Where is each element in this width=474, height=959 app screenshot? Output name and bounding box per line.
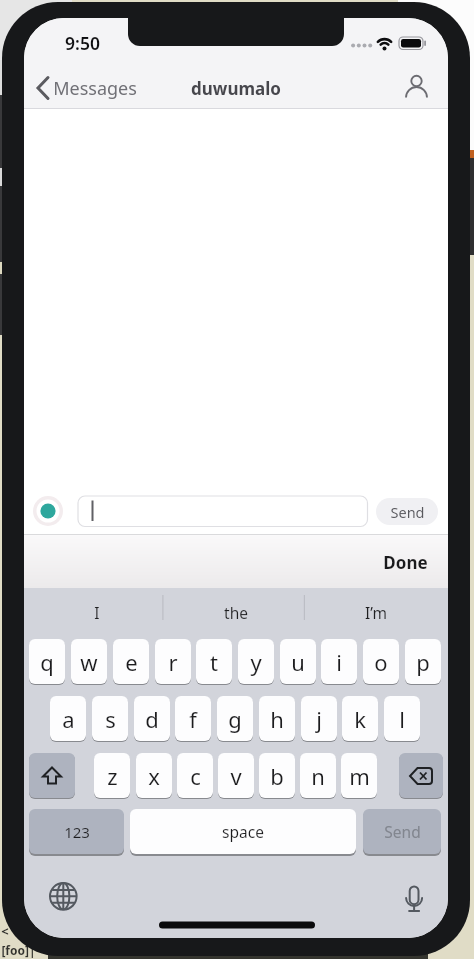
button[interactable]: I’m — [319, 599, 433, 625]
button[interactable]: u — [280, 639, 316, 684]
staticText: f — [189, 704, 197, 734]
button[interactable]: the — [179, 599, 293, 625]
button[interactable]: k — [342, 696, 378, 741]
staticText: o — [374, 647, 388, 677]
button[interactable]: p — [405, 639, 441, 684]
button[interactable]: z — [94, 753, 130, 798]
staticText: q — [40, 647, 54, 677]
button[interactable] — [29, 753, 75, 798]
staticText: Messages — [53, 76, 137, 100]
staticText: I — [94, 602, 100, 623]
button[interactable]: w — [71, 639, 107, 684]
button[interactable]: e — [113, 639, 149, 684]
staticText: [foo]| — [1, 942, 36, 958]
staticText: c — [190, 761, 201, 791]
staticText: the — [224, 602, 248, 623]
staticText: a — [62, 704, 75, 734]
button[interactable] — [399, 753, 443, 798]
staticText: k — [354, 704, 366, 734]
staticText: y — [250, 647, 262, 677]
staticText: e — [125, 647, 138, 677]
button[interactable]: v — [218, 753, 254, 798]
staticText: d — [145, 704, 159, 734]
staticText: n — [311, 761, 325, 791]
button[interactable]: n — [300, 753, 336, 798]
staticText: r — [168, 647, 178, 677]
staticText: z — [107, 761, 118, 791]
button[interactable]: t — [196, 639, 232, 684]
button[interactable]: s — [92, 696, 128, 741]
staticText: duwumalo — [191, 77, 281, 100]
button[interactable]: m — [341, 753, 377, 798]
button[interactable] — [396, 879, 432, 915]
button[interactable]: l — [384, 696, 420, 741]
button[interactable]: Messages — [53, 76, 163, 100]
staticText: u — [291, 647, 305, 677]
button[interactable]: I — [40, 599, 154, 625]
button[interactable]: i — [321, 639, 357, 684]
staticText: j — [316, 704, 322, 734]
button[interactable]: space — [130, 809, 356, 854]
staticText: < — [1, 922, 9, 938]
button[interactable]: Done — [364, 549, 428, 575]
button[interactable] — [78, 496, 368, 527]
staticText: i — [336, 647, 342, 677]
staticText: t — [210, 647, 218, 677]
button[interactable]: x — [136, 753, 172, 798]
staticText: 9:50 — [65, 31, 100, 53]
button[interactable] — [46, 879, 82, 915]
button[interactable]: h — [259, 696, 295, 741]
staticText: g — [228, 704, 242, 734]
button[interactable]: q — [29, 639, 65, 684]
button[interactable]: o — [363, 639, 399, 684]
button[interactable]: j — [301, 696, 337, 741]
button[interactable]: Send — [363, 809, 441, 854]
button[interactable]: c — [177, 753, 213, 798]
button[interactable]: Send — [376, 498, 438, 525]
button[interactable]: b — [259, 753, 295, 798]
staticText: m — [349, 761, 370, 791]
staticText: Done — [383, 551, 428, 574]
button[interactable]: d — [134, 696, 170, 741]
staticText: p — [416, 647, 430, 677]
staticText: b — [270, 761, 284, 791]
button[interactable]: a — [50, 696, 86, 741]
button[interactable]: y — [238, 639, 274, 684]
staticText: Send — [390, 502, 425, 522]
staticText: 123 — [64, 822, 90, 842]
button[interactable]: g — [217, 696, 253, 741]
button[interactable]: r — [155, 639, 191, 684]
staticText: s — [105, 704, 116, 734]
button[interactable]: f — [175, 696, 211, 741]
staticText: Send — [384, 821, 421, 842]
staticText: h — [270, 704, 284, 734]
staticText: space — [222, 821, 264, 842]
staticText: v — [230, 761, 242, 791]
staticText: I’m — [365, 602, 387, 623]
staticText: w — [80, 647, 98, 677]
staticText: x — [148, 761, 160, 791]
button[interactable]: 123 — [29, 809, 124, 854]
staticText: l — [399, 704, 405, 734]
button[interactable] — [398, 68, 436, 108]
